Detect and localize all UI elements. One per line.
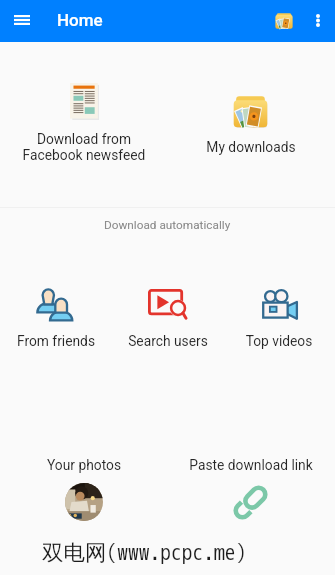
staticText: Download from Facebook newsfeed	[14, 131, 154, 163]
button[interactable]: Home	[50, 5, 96, 37]
staticText: From friends	[6, 333, 106, 349]
button[interactable]: My downloads	[181, 92, 321, 168]
button[interactable]: From friends	[6, 282, 106, 352]
staticText: Download automatically	[104, 218, 231, 232]
button[interactable]: Your photos	[14, 455, 154, 525]
staticText: 双电网(www.pcpc.me)	[42, 539, 247, 566]
staticText: My downloads	[181, 139, 321, 155]
button[interactable]: My gallery	[267, 3, 301, 39]
staticText: Home	[57, 10, 103, 30]
staticText: Search users	[118, 333, 218, 349]
button[interactable]: Download from Facebook newsfeed	[14, 76, 154, 168]
staticText: Paste download link	[181, 457, 321, 473]
button[interactable]: Paste download link	[181, 455, 321, 525]
button[interactable]: Search users	[118, 282, 218, 352]
staticText: Your photos	[14, 457, 154, 473]
button[interactable]: Open navigation menu	[2, 3, 42, 39]
button[interactable]: More options	[303, 3, 333, 39]
staticText: Top videos	[229, 333, 329, 349]
button[interactable]: Top videos	[229, 282, 329, 352]
